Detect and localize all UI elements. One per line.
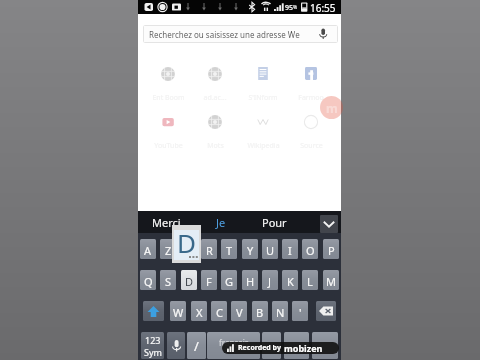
button[interactable]: Source (288, 114, 334, 150)
staticText: ad.ac... (203, 93, 227, 103)
staticText: % (293, 4, 298, 11)
button[interactable]: Mobizen recorder (320, 96, 343, 119)
staticText: Merci (152, 215, 181, 230)
button[interactable]: P (323, 239, 339, 259)
button[interactable]: Q (140, 270, 156, 290)
staticText: mobizen (284, 342, 323, 354)
staticText: W (173, 305, 184, 320)
staticText: Farmoo (298, 93, 324, 103)
staticText: Recorded by (238, 343, 281, 353)
staticText: Wikipedia (247, 141, 280, 151)
staticText: B (256, 305, 264, 320)
staticText: X (196, 305, 203, 320)
button[interactable]: J (262, 270, 278, 290)
button[interactable]: Hide suggestions (320, 215, 338, 233)
staticText: français (219, 337, 249, 348)
staticText: V (236, 305, 243, 320)
button[interactable]: YouTube (145, 114, 191, 150)
staticText: O (306, 243, 315, 258)
staticText: R (206, 243, 213, 258)
staticText: P (328, 243, 335, 258)
staticText: E (186, 243, 193, 258)
staticText: Y (247, 243, 254, 258)
button[interactable]: Shift (143, 301, 164, 321)
staticText: 123 (145, 334, 161, 346)
button[interactable]: I (282, 239, 298, 259)
button[interactable]: Ent Boom (145, 66, 191, 102)
button[interactable]: R (201, 239, 217, 259)
button[interactable]: Space (207, 332, 260, 359)
staticText: Sym (144, 346, 162, 358)
staticText: Ent Boom (152, 93, 185, 103)
staticText: K (287, 274, 294, 289)
staticText: 95 (285, 3, 294, 13)
staticText: S'INform (248, 93, 278, 103)
staticText: S (165, 274, 172, 289)
button[interactable]: N (272, 301, 288, 321)
staticText: ' (299, 305, 302, 320)
staticText: G (225, 274, 234, 289)
button[interactable]: V (231, 301, 247, 321)
staticText: C (216, 305, 223, 320)
button[interactable]: L (302, 270, 318, 290)
other: Voice search (318, 28, 328, 40)
staticText: Recherchez ou saisissez une adresse We (149, 29, 300, 40)
button[interactable]: F (201, 270, 217, 290)
staticText: , (270, 336, 273, 351)
button[interactable]: Backspace (316, 301, 336, 321)
staticText: D (177, 225, 196, 260)
button[interactable]: Voice input (167, 332, 185, 359)
button[interactable]: M (323, 270, 339, 290)
button[interactable]: C (211, 301, 227, 321)
staticText: . (295, 336, 298, 351)
button[interactable]: , (262, 332, 281, 359)
staticText: H (246, 274, 255, 289)
button[interactable]: W (170, 301, 186, 321)
staticText: 16:55 (310, 1, 336, 15)
button[interactable]: B (252, 301, 268, 321)
staticText: U (266, 243, 275, 258)
staticText: Pour (262, 215, 287, 230)
staticText: Mots (207, 141, 224, 151)
button[interactable]: S'INform (240, 66, 286, 102)
button[interactable]: . (284, 332, 309, 359)
button[interactable]: X (191, 301, 207, 321)
button[interactable]: Mots (192, 114, 238, 150)
button[interactable]: K (282, 270, 298, 290)
button[interactable]: D (181, 270, 197, 290)
button[interactable]: / (187, 332, 206, 359)
staticText: m (326, 100, 338, 116)
button[interactable]: Farmoo (288, 66, 334, 102)
staticText: Z (165, 243, 172, 258)
button[interactable]: E (181, 239, 197, 259)
staticText: YouTube (154, 141, 183, 151)
staticText: N (276, 305, 285, 320)
button[interactable]: 123 (141, 332, 164, 359)
button[interactable]: G (221, 270, 237, 290)
staticText: Source (300, 141, 323, 151)
button[interactable]: A (140, 239, 156, 259)
staticText: D (185, 274, 194, 289)
button[interactable]: ' (292, 301, 308, 321)
staticText: T (226, 243, 233, 258)
button[interactable]: Z (160, 239, 176, 259)
staticText: J (268, 274, 272, 289)
button[interactable]: ad.ac... (192, 66, 238, 102)
staticText: I (288, 243, 292, 258)
staticText: M (326, 274, 336, 289)
staticText: / (194, 337, 199, 355)
button[interactable]: U (262, 239, 278, 259)
button[interactable]: S (160, 270, 176, 290)
button[interactable]: O (302, 239, 318, 259)
staticText: Je (216, 215, 226, 230)
staticText: F (206, 274, 212, 289)
button[interactable]: Enter (312, 332, 338, 359)
button[interactable]: Wikipedia (240, 114, 286, 150)
button[interactable]: T (221, 239, 237, 259)
button[interactable]: Recherchez ou saisissez une adresse We (143, 25, 338, 43)
staticText: L (307, 274, 313, 289)
staticText: Q (144, 274, 153, 289)
staticText: A (144, 243, 152, 258)
button[interactable]: Y (242, 239, 258, 259)
button[interactable]: H (242, 270, 258, 290)
